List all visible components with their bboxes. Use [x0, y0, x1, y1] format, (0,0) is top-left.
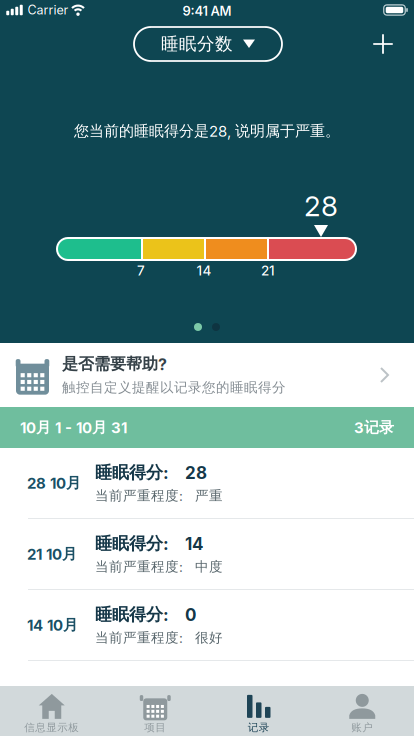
staticText: 睡眠得分: 0: [95, 604, 196, 625]
staticText: 记录: [248, 721, 270, 734]
staticText: 是否需要帮助?: [62, 354, 167, 374]
button[interactable]: 21 10月: [0, 519, 414, 590]
staticText: 账户: [351, 721, 373, 734]
button[interactable]: 项目: [103, 686, 207, 735]
staticText: 您当前的睡眠得分是28, 说明属于严重。: [74, 122, 340, 140]
staticText: 9:41 AM: [182, 3, 231, 19]
staticText: Carrier: [27, 2, 68, 17]
staticText: 当前严重程度: 很好: [95, 629, 223, 646]
staticText: 触控自定义提醒以记录您的睡眠得分: [62, 379, 286, 396]
staticText: 7: [137, 262, 145, 279]
staticText: 睡眠得分: 28: [95, 462, 207, 483]
staticText: 3记录: [354, 418, 394, 437]
staticText: 28: [304, 189, 338, 223]
button[interactable]: 28 10月: [0, 448, 414, 519]
staticText: 当前严重程度: 中度: [95, 558, 223, 575]
staticText: 14: [196, 262, 211, 279]
staticText: 14 10月: [27, 616, 78, 634]
staticText: 信息显示板: [24, 721, 79, 734]
staticText: 21 10月: [27, 545, 77, 563]
button[interactable]: Add record: [368, 29, 398, 59]
button[interactable]: 账户: [310, 686, 414, 735]
staticText: 28 10月: [27, 474, 81, 492]
staticText: 21: [261, 262, 275, 279]
button[interactable]: 14 10月: [0, 590, 414, 661]
button[interactable]: 记录: [207, 686, 310, 735]
button[interactable]: 信息显示板: [0, 686, 103, 735]
staticText: 睡眠得分: 14: [95, 533, 203, 554]
button[interactable]: 是否需要帮助?: [0, 343, 414, 407]
staticText: 睡眠分数: [161, 33, 233, 55]
staticText: 项目: [144, 721, 166, 734]
staticText: 当前严重程度: 严重: [95, 487, 223, 504]
staticText: 10月 1 - 10月 31: [20, 418, 127, 437]
button[interactable]: 睡眠分数: [134, 27, 282, 61]
